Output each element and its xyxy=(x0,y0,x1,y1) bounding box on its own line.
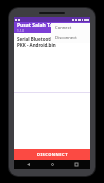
staticText: Pusat Salah Tabiq xyxy=(17,22,61,29)
staticText: 1.1.0 xyxy=(17,29,25,33)
button[interactable]: Recent apps xyxy=(66,160,86,169)
staticText: Disconnect xyxy=(55,35,77,41)
button[interactable]: Connect xyxy=(51,23,90,33)
staticText: Serial Bluetooth Amjidiya - xyxy=(17,36,77,42)
button[interactable]: Back xyxy=(18,160,38,169)
button[interactable]: Home xyxy=(42,160,62,169)
button[interactable]: Disconnect xyxy=(51,33,90,43)
staticText: PKK - Android.bin xyxy=(17,42,56,48)
staticText: DISCONNECT xyxy=(37,152,68,157)
button[interactable]: DISCONNECT xyxy=(14,149,90,160)
staticText: Connect xyxy=(55,25,72,31)
